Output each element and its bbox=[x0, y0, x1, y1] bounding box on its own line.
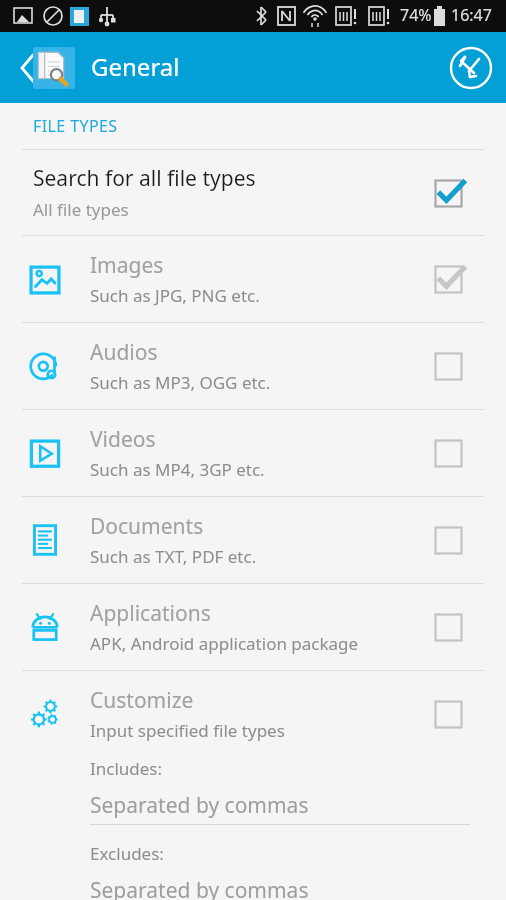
button[interactable]: Toggle bbox=[433, 262, 467, 296]
staticText: Excludes: bbox=[90, 842, 164, 865]
staticText: FILE TYPES bbox=[33, 115, 118, 137]
staticText: Applications bbox=[90, 599, 211, 628]
staticText: Such as JPG, PNG etc. bbox=[90, 284, 260, 307]
staticText: All file types bbox=[33, 198, 129, 221]
staticText: Such as TXT, PDF etc. bbox=[90, 545, 257, 568]
staticText: Input specified file types bbox=[90, 719, 285, 742]
button[interactable]: Documents bbox=[0, 497, 506, 583]
button[interactable]: Separated by commas bbox=[90, 876, 309, 900]
button[interactable]: Back bbox=[4, 46, 48, 90]
staticText: Customize bbox=[90, 686, 194, 715]
button[interactable]: Toggle bbox=[433, 610, 467, 644]
button[interactable]: Videos bbox=[0, 410, 506, 496]
button[interactable]: Toggle bbox=[433, 436, 467, 470]
staticText: Includes: bbox=[90, 757, 163, 780]
staticText: APK, Android application package bbox=[90, 632, 359, 655]
button[interactable]: Separated by commas bbox=[90, 791, 309, 820]
button[interactable]: Settings bbox=[448, 45, 494, 91]
staticText: Videos bbox=[90, 425, 156, 454]
button[interactable]: Customize bbox=[0, 671, 506, 757]
staticText: Search for all file types bbox=[33, 164, 256, 193]
staticText: Such as MP3, OGG etc. bbox=[90, 371, 271, 394]
staticText: General bbox=[91, 50, 180, 83]
button[interactable]: Search for all file types bbox=[0, 150, 506, 235]
button[interactable]: Audios bbox=[0, 323, 506, 409]
button[interactable]: Images bbox=[0, 236, 506, 322]
button[interactable]: Toggle bbox=[433, 349, 467, 383]
staticText: Documents bbox=[90, 512, 204, 541]
button[interactable]: Toggle bbox=[433, 176, 467, 210]
staticText: 74% bbox=[400, 4, 432, 26]
staticText: Images bbox=[90, 251, 164, 280]
button[interactable]: Toggle bbox=[433, 697, 467, 731]
staticText: Audios bbox=[90, 338, 158, 367]
staticText: Such as MP4, 3GP etc. bbox=[90, 458, 265, 481]
button[interactable]: Toggle bbox=[433, 523, 467, 557]
button[interactable]: Applications bbox=[0, 584, 506, 670]
staticText: 16:47 bbox=[451, 4, 492, 26]
